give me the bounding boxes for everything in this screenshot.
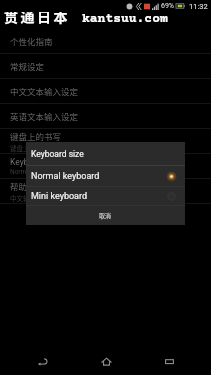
- staticText: 帮助: [10, 180, 28, 192]
- staticText: 中文输入法使用帮助: [10, 193, 69, 202]
- staticText: 取消: [99, 211, 112, 220]
- staticText: 中文文本输入设定: [10, 85, 79, 97]
- button[interactable]: Home: [84, 347, 128, 375]
- staticText: Keyboard size: [31, 149, 84, 159]
- staticText: 69%: [161, 2, 174, 10]
- button[interactable]: 帮助: [0, 179, 211, 204]
- button[interactable]: 中文文本输入设定: [0, 79, 211, 104]
- button[interactable]: 个性化指南: [0, 29, 211, 54]
- staticText: 11:32: [189, 2, 208, 11]
- staticText: 常规设定: [10, 60, 45, 72]
- button[interactable]: 键盘上的书写: [0, 129, 211, 154]
- staticText: 贯通日本: [4, 6, 71, 26]
- staticText: Keyboard size: [10, 157, 63, 167]
- staticText: 键盘上的书写: [10, 130, 62, 142]
- staticText: 英语文本输入设定: [10, 110, 79, 122]
- button[interactable]: Mini keyboard: [26, 187, 185, 205]
- button[interactable]: Back: [20, 347, 64, 375]
- staticText: Normal keyboard: [10, 168, 60, 176]
- button[interactable]: Keyboard size: [0, 154, 211, 179]
- staticText: kantsuu.com: [82, 12, 168, 27]
- staticText: Mini keyboard: [31, 191, 88, 202]
- button[interactable]: Normal keyboard: [26, 166, 185, 186]
- staticText: 个性化指南: [10, 35, 53, 47]
- button[interactable]: 常规设定: [0, 54, 211, 79]
- staticText: 键盘上手写输入: [10, 143, 56, 152]
- button[interactable]: 取消: [26, 206, 185, 225]
- staticText: Normal keyboard: [31, 171, 100, 182]
- button[interactable]: 英语文本输入设定: [0, 104, 211, 129]
- button[interactable]: Recent apps: [147, 347, 191, 375]
